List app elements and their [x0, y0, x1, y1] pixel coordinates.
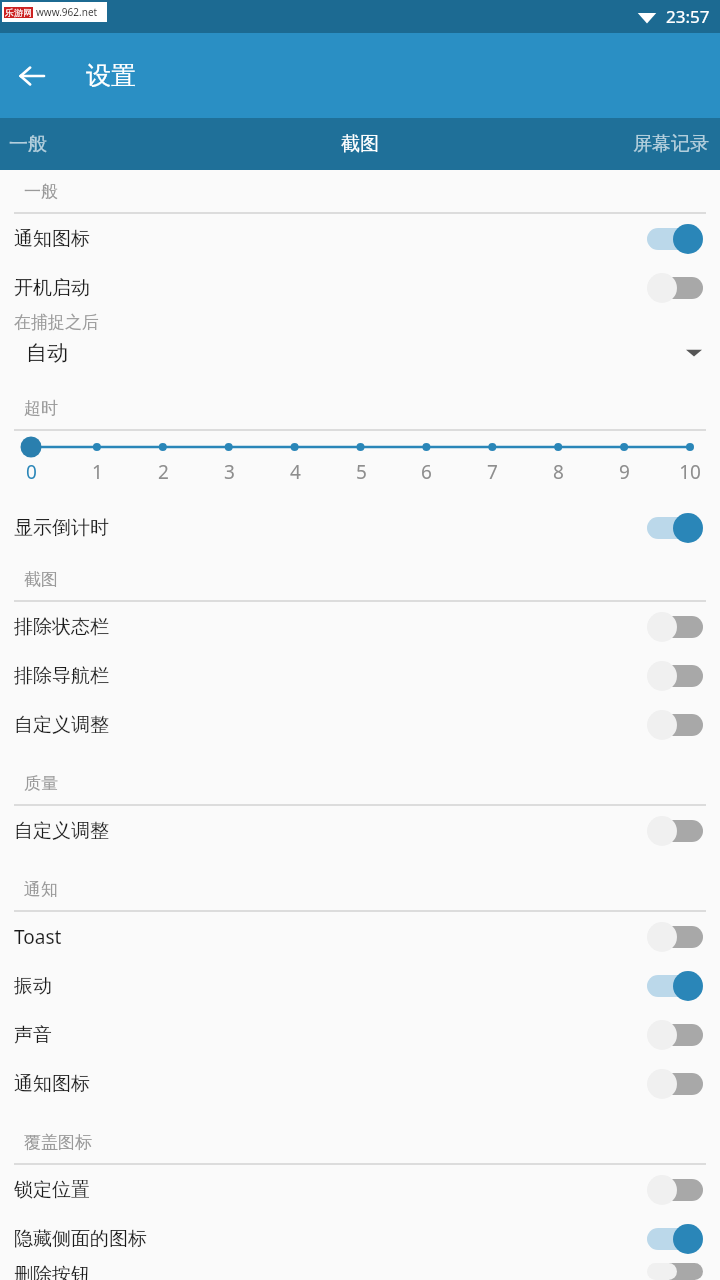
button[interactable]: 自定义调整 — [0, 700, 720, 749]
staticText: 5 — [356, 459, 367, 485]
staticText: 一般 — [24, 181, 58, 202]
button[interactable]: 开机启动 — [0, 263, 720, 312]
staticText: 截图 — [341, 132, 379, 156]
button[interactable]: 通知图标 — [0, 214, 720, 263]
staticText: 截图 — [24, 569, 58, 590]
staticText: 4 — [290, 459, 301, 485]
staticText: 隐藏侧面的图标 — [14, 1227, 644, 1251]
other: Wi-Fi — [636, 6, 658, 28]
staticText: 自动 — [26, 340, 686, 366]
staticText: 乐游网 — [5, 7, 32, 18]
staticText: 振动 — [14, 974, 644, 998]
button[interactable]: 删除按钮 — [0, 1263, 720, 1280]
button[interactable]: 屏幕记录 — [570, 118, 720, 170]
staticText: 设置 — [86, 60, 136, 91]
staticText: 开机启动 — [14, 276, 644, 300]
button[interactable]: 自定义调整 — [0, 806, 720, 855]
staticText: 覆盖图标 — [24, 1132, 92, 1153]
staticText: 7 — [487, 459, 498, 485]
button[interactable]: 排除状态栏 — [0, 602, 720, 651]
button[interactable]: 一般 — [0, 118, 120, 170]
staticText: 一般 — [9, 132, 47, 156]
staticText: 10 — [679, 459, 701, 485]
staticText: 排除状态栏 — [14, 615, 644, 639]
staticText: 排除导航栏 — [14, 664, 644, 688]
button[interactable]: 声音 — [0, 1010, 720, 1059]
staticText: 屏幕记录 — [633, 132, 709, 156]
staticText: Toast — [14, 924, 644, 950]
staticText: 3 — [224, 459, 235, 485]
staticText: 显示倒计时 — [14, 516, 644, 540]
staticText: 0 — [26, 459, 37, 485]
staticText: 声音 — [14, 1023, 644, 1047]
button[interactable]: 隐藏侧面的图标 — [0, 1214, 720, 1263]
staticText: 在捕捉之后 — [14, 312, 99, 333]
button[interactable]: 通知图标 — [0, 1059, 720, 1108]
staticText: 删除按钮 — [14, 1263, 644, 1280]
button[interactable]: 显示倒计时 — [0, 503, 720, 552]
staticText: 8 — [553, 459, 564, 485]
staticText: 自定义调整 — [14, 713, 644, 737]
staticText: 通知图标 — [14, 1072, 644, 1096]
button[interactable]: 振动 — [0, 961, 720, 1010]
staticText: 通知图标 — [14, 227, 644, 251]
staticText: 23:57 — [666, 5, 710, 28]
staticText: 9 — [619, 459, 630, 485]
staticText: 自定义调整 — [14, 819, 644, 843]
button[interactable]: 锁定位置 — [0, 1165, 720, 1214]
staticText: 1 — [92, 459, 103, 485]
button[interactable]: 0 — [0, 431, 720, 503]
staticText: 超时 — [24, 398, 58, 419]
button[interactable]: Back — [0, 44, 64, 108]
staticText: 质量 — [24, 773, 58, 794]
button[interactable]: 截图 — [250, 118, 470, 170]
staticText: www.962.net — [36, 5, 98, 19]
staticText: 通知 — [24, 879, 58, 900]
staticText: 锁定位置 — [14, 1178, 644, 1202]
button[interactable]: Toast — [0, 912, 720, 961]
button[interactable]: 在捕捉之后 — [0, 312, 720, 373]
staticText: 2 — [158, 459, 169, 485]
button[interactable]: 排除导航栏 — [0, 651, 720, 700]
staticText: 6 — [421, 459, 432, 485]
